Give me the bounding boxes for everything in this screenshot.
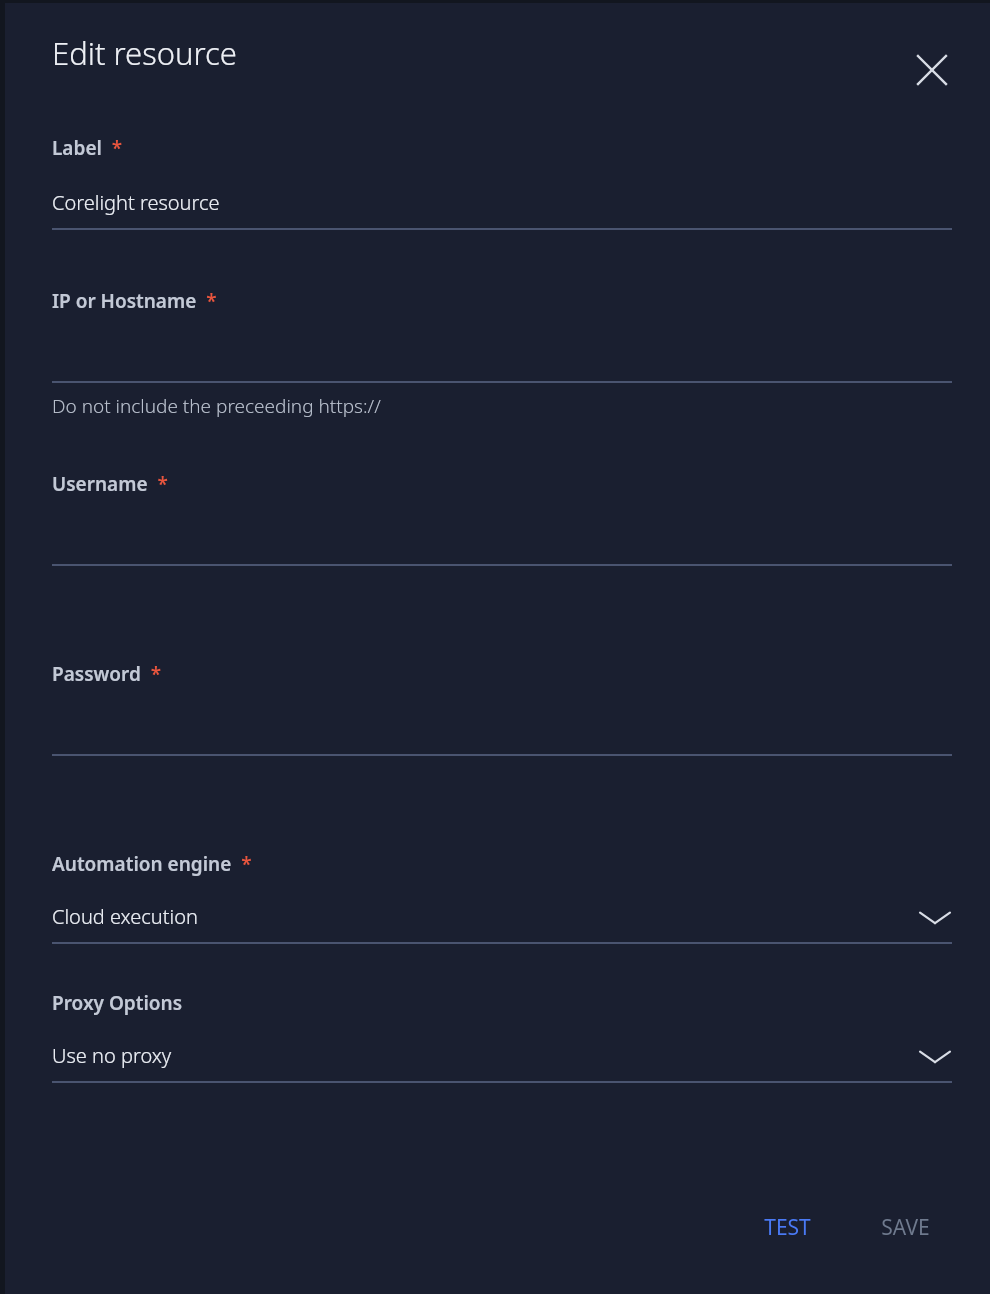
staticText: TEST: [764, 1213, 811, 1242]
staticText: Do not include the preceeding https://: [52, 393, 381, 419]
button[interactable]: TEST: [748, 1203, 827, 1252]
staticText: Username *: [52, 471, 168, 497]
staticText: IP or Hostname *: [52, 288, 217, 314]
button[interactable]: Automation engine *: [52, 851, 952, 944]
staticText: Automation engine *: [52, 851, 252, 877]
button[interactable]: Username *: [52, 471, 952, 566]
staticText: SAVE: [881, 1213, 930, 1242]
staticText: Cloud execution: [52, 903, 918, 930]
button[interactable]: Label *: [52, 135, 952, 230]
button[interactable]: Close: [907, 45, 957, 95]
button[interactable]: IP or Hostname *: [52, 288, 952, 383]
button[interactable]: Proxy Options: [52, 990, 952, 1083]
staticText: Proxy Options: [52, 990, 183, 1016]
staticText: Corelight resource: [52, 189, 952, 216]
button[interactable]: Password *: [52, 661, 952, 756]
staticText: Label *: [52, 135, 123, 161]
button[interactable]: SAVE: [865, 1203, 946, 1252]
staticText: Edit resource: [52, 32, 237, 74]
staticText: Password *: [52, 661, 162, 687]
staticText: Use no proxy: [52, 1042, 918, 1069]
